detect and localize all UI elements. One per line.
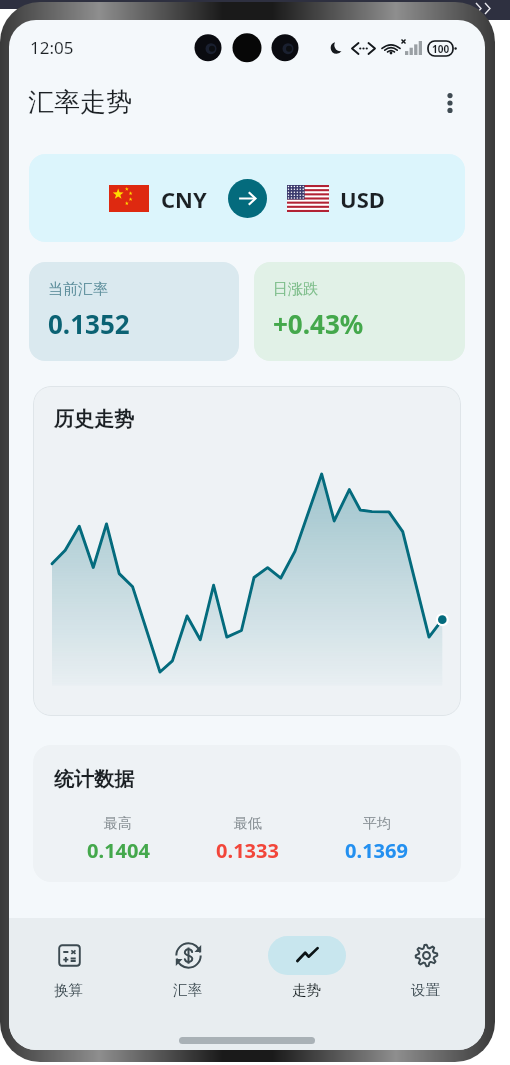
staticText: 0.1369 [345,837,408,864]
staticText: 0.1333 [216,837,279,864]
other: Rates [177,944,200,967]
staticText: 平均 [363,815,391,833]
staticText: 换算 [54,981,83,999]
staticText: 历史走势 [54,407,134,432]
button[interactable]: 当前汇率 [29,262,239,361]
staticText: 12:05 [30,36,74,59]
button[interactable]: More options [433,86,467,120]
other: Settings [415,944,438,967]
staticText: 日涨跌 [273,280,318,299]
staticText: 统计数据 [54,767,134,792]
staticText: +0.43% [273,306,364,341]
staticText: 0.1352 [48,306,130,341]
other: Convert [58,944,81,967]
button[interactable]: Trend [247,936,366,999]
button[interactable]: Settings [366,936,485,999]
button[interactable]: 日涨跌 [254,262,465,361]
staticText: 100 [432,42,450,56]
staticText: CNY [161,184,207,214]
staticText: 汇率走势 [28,86,132,119]
button[interactable]: CNY [29,154,465,242]
staticText: 汇率 [173,981,202,999]
staticText: 设置 [411,981,440,999]
staticText: 最低 [234,815,262,833]
staticText: 走势 [292,981,321,999]
staticText: USD [340,184,385,214]
button[interactable]: Rates [128,936,247,999]
staticText: 0.1404 [87,837,150,864]
staticText: 当前汇率 [48,280,108,299]
other: Trend [296,944,319,967]
button[interactable]: Convert [9,936,128,999]
button[interactable]: Swap currencies [228,179,267,218]
staticText: 最高 [104,815,132,833]
